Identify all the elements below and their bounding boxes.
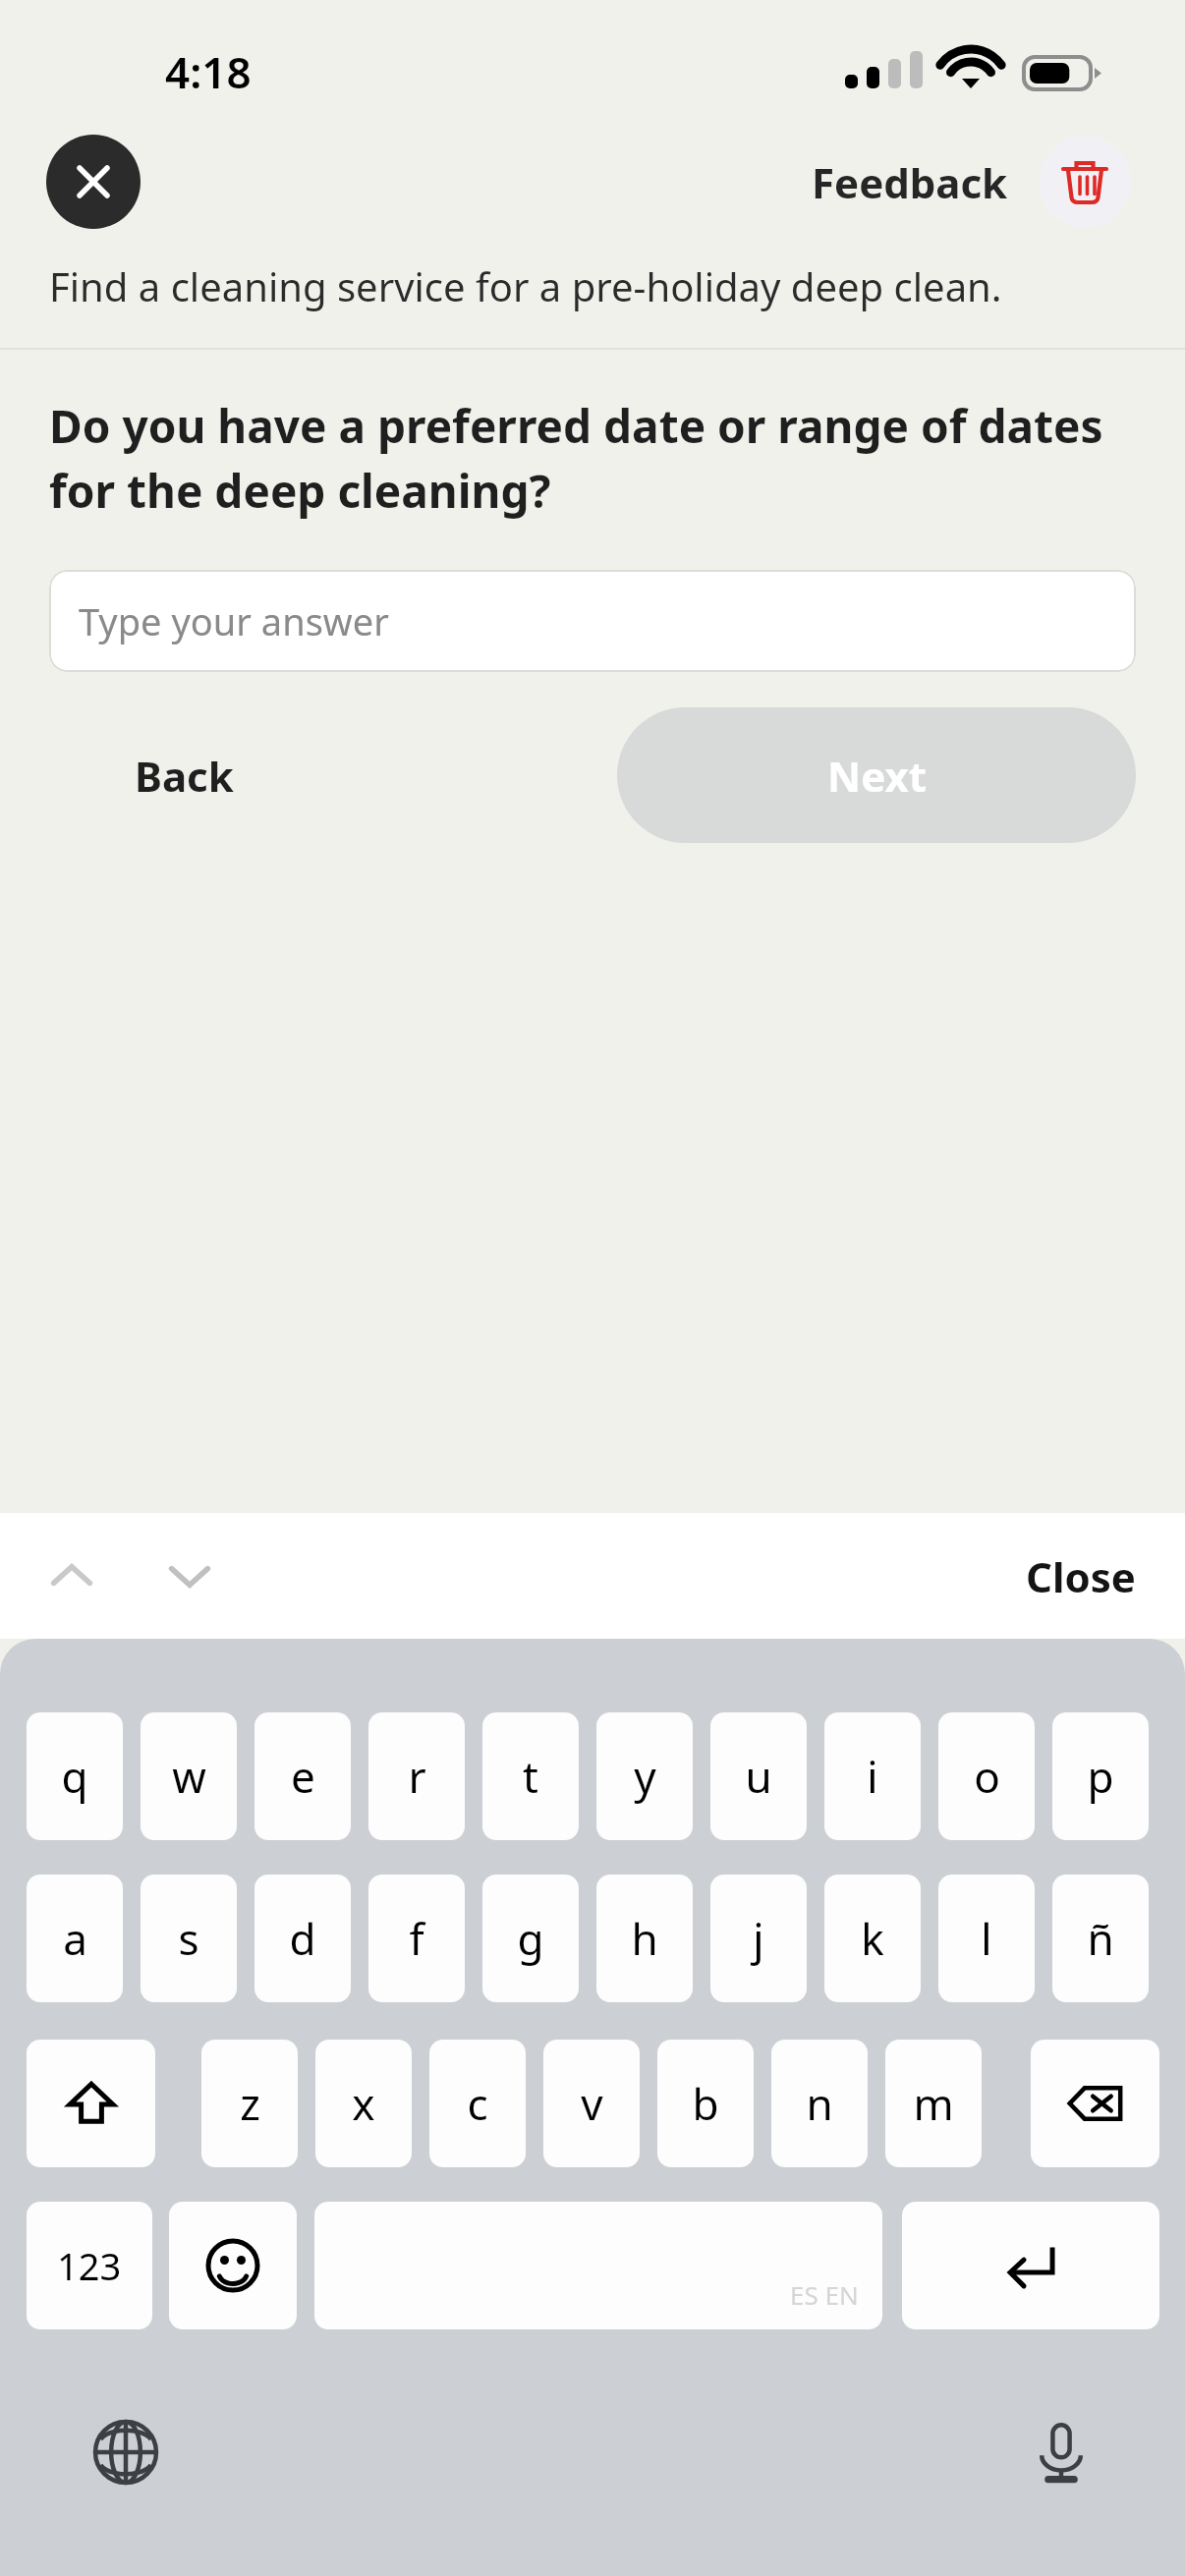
staticText: e [291,1747,315,1806]
button[interactable]: i [824,1712,921,1840]
staticText: d [289,1909,316,1968]
button[interactable]: Next [617,707,1136,843]
button[interactable]: m [885,2040,982,2167]
button[interactable]: t [482,1712,579,1840]
button[interactable]: p [1052,1712,1149,1840]
staticText: v [581,2074,603,2133]
button[interactable]: s [141,1875,237,2002]
staticText: Back [135,748,234,804]
button[interactable]: x [315,2040,412,2167]
button[interactable]: n [771,2040,868,2167]
button[interactable]: f [368,1875,465,2002]
button[interactable]: Key [1031,2040,1159,2167]
staticText: Do you have a preferred date or range of… [49,395,1146,521]
button[interactable]: 123 [27,2202,152,2329]
staticText: h [631,1909,658,1968]
staticText: 123 [57,2240,122,2291]
staticText: c [467,2074,488,2133]
staticText: q [61,1747,88,1806]
button[interactable]: e [254,1712,351,1840]
staticText: Next [827,748,927,804]
staticText: g [517,1909,544,1968]
button[interactable]: w [141,1712,237,1840]
button[interactable]: Type your answer [49,570,1136,672]
staticText: t [523,1747,538,1806]
staticText: j [753,1909,764,1968]
button[interactable]: Close [1006,1522,1156,1630]
button[interactable]: o [938,1712,1035,1840]
button[interactable]: h [596,1875,693,2002]
button[interactable]: Next field [145,1532,234,1620]
button[interactable]: q [27,1712,123,1840]
staticText: a [63,1909,87,1968]
staticText: m [913,2074,954,2133]
button[interactable]: Previous field [28,1532,116,1620]
button[interactable]: j [710,1875,807,2002]
staticText: x [352,2074,375,2133]
button[interactable]: z [201,2040,298,2167]
staticText: s [178,1909,199,1968]
button[interactable]: Key [27,2040,155,2167]
staticText: o [974,1747,1000,1806]
staticText: l [981,1909,992,1968]
button[interactable]: r [368,1712,465,1840]
button[interactable]: Return [902,2202,1159,2329]
button[interactable]: v [543,2040,640,2167]
button[interactable]: Back [49,707,319,843]
button[interactable]: y [596,1712,693,1840]
button[interactable]: d [254,1875,351,2002]
staticText: Find a cleaning service for a pre-holida… [49,259,1097,312]
staticText: n [806,2074,833,2133]
staticText: r [408,1747,426,1806]
staticText: u [745,1747,772,1806]
button[interactable]: c [429,2040,526,2167]
button[interactable]: Delete [1039,136,1131,228]
button[interactable]: Space [314,2202,882,2329]
staticText: ñ [1087,1909,1114,1968]
button[interactable]: u [710,1712,807,1840]
staticText: ES EN [790,2277,859,2312]
staticText: b [692,2074,719,2133]
staticText: i [867,1747,878,1806]
button[interactable]: Change keyboard [67,2393,185,2511]
staticText: Type your answer [79,595,389,646]
button[interactable]: k [824,1875,921,2002]
staticText: k [861,1909,884,1968]
button[interactable]: b [657,2040,754,2167]
staticText: 4:18 [165,42,252,101]
button[interactable]: l [938,1875,1035,2002]
staticText: f [409,1909,424,1968]
button[interactable]: Emoji [169,2202,297,2329]
button[interactable]: Voice input [1002,2393,1120,2511]
staticText: p [1087,1747,1114,1806]
button[interactable]: g [482,1875,579,2002]
button[interactable]: Close [46,135,141,229]
staticText: Feedback [812,154,1008,210]
staticText: Close [1026,1548,1136,1604]
staticText: y [634,1747,656,1806]
button[interactable]: a [27,1875,123,2002]
staticText: z [240,2074,260,2133]
staticText: w [172,1747,206,1806]
button[interactable]: ñ [1052,1875,1149,2002]
